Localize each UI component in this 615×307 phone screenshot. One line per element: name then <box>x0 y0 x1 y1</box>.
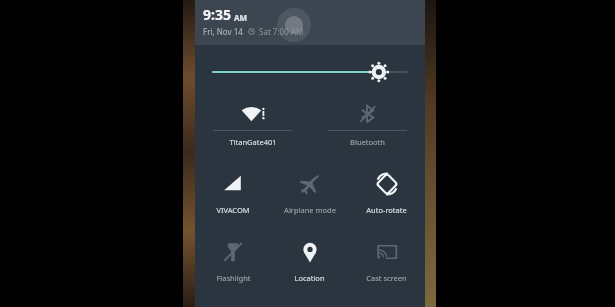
button[interactable]: Brightness <box>195 61 425 83</box>
staticText: AM <box>234 12 248 23</box>
staticText: 9:35 <box>203 5 231 24</box>
button[interactable]: Wi-Fi <box>195 97 310 153</box>
staticText: Fri, Nov 14 <box>203 26 243 37</box>
staticText: Cast screen <box>366 273 407 283</box>
button[interactable]: Auto rotate <box>348 163 425 221</box>
staticText: VIVACOM <box>216 205 250 215</box>
button[interactable]: Location <box>271 231 348 289</box>
button[interactable]: Cast screen <box>348 231 425 289</box>
staticText: Auto-rotate <box>366 205 407 215</box>
staticText: Sat 7:00 AM <box>259 26 304 37</box>
staticText: Location <box>294 273 325 283</box>
button[interactable]: Mobile signal <box>195 163 271 221</box>
button[interactable]: Airplane mode <box>271 163 348 221</box>
staticText: TitanGate401 <box>229 137 277 147</box>
staticText: Airplane mode <box>284 205 336 215</box>
staticText: Flashlight <box>216 273 251 283</box>
staticText: Bluetooth <box>350 137 385 147</box>
button[interactable]: Bluetooth <box>310 97 425 153</box>
button[interactable]: Flashlight <box>195 231 271 289</box>
